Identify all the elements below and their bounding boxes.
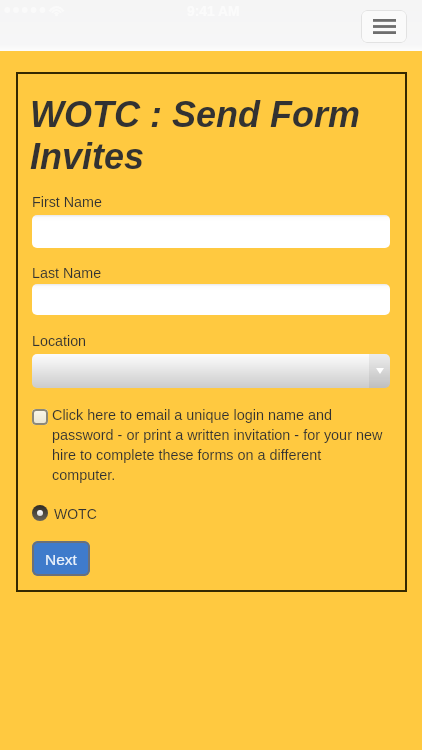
button[interactable]: Next bbox=[32, 541, 90, 576]
button[interactable]: Menu bbox=[361, 10, 407, 43]
staticText: WOTC bbox=[54, 506, 97, 522]
staticText: Next bbox=[45, 551, 77, 568]
button[interactable] bbox=[32, 215, 390, 248]
button[interactable]: Check to email invite bbox=[32, 409, 48, 425]
button[interactable] bbox=[32, 284, 390, 315]
button[interactable]: WOTC bbox=[32, 505, 97, 521]
staticText: First Name bbox=[32, 194, 102, 210]
staticText: Click here to email a unique login name … bbox=[52, 404, 388, 484]
staticText: Last Name bbox=[32, 265, 102, 281]
staticText: Location bbox=[32, 333, 87, 349]
staticText: WOTC : Send Form Invites bbox=[30, 93, 421, 177]
button[interactable]: Location selector bbox=[32, 354, 390, 388]
